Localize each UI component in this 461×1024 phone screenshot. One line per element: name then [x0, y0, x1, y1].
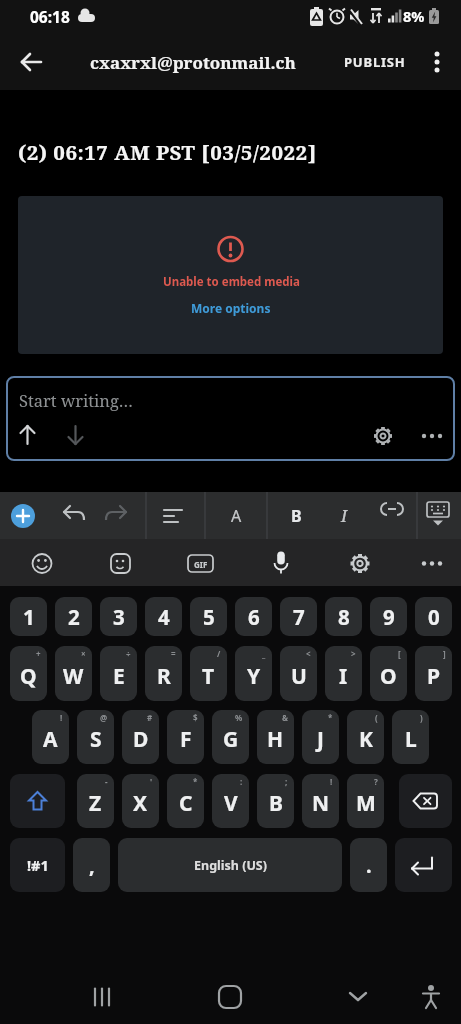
button[interactable] — [409, 975, 453, 1019]
button[interactable]: 1 — [10, 597, 47, 636]
button[interactable] — [5, 498, 41, 534]
staticText: Z — [89, 789, 102, 818]
staticText: / — [217, 648, 221, 659]
staticText: _ — [262, 648, 266, 659]
staticText: T — [202, 662, 215, 691]
button[interactable]: ' — [122, 774, 159, 828]
button[interactable]: / — [190, 646, 227, 701]
staticText: L — [405, 725, 417, 754]
button[interactable]: [ — [370, 646, 407, 701]
staticText: % — [235, 712, 243, 723]
button[interactable] — [399, 774, 452, 828]
button[interactable]: = — [145, 646, 182, 701]
button[interactable] — [10, 41, 54, 85]
button[interactable]: ? — [347, 774, 384, 828]
button[interactable] — [101, 496, 139, 536]
button[interactable]: @ — [77, 710, 114, 764]
button[interactable] — [420, 496, 458, 536]
button[interactable]: 2 — [55, 597, 92, 636]
staticText: = — [171, 648, 176, 659]
button[interactable] — [278, 496, 316, 536]
button[interactable] — [98, 542, 142, 584]
button[interactable]: * — [167, 774, 204, 828]
staticText: 9 — [383, 603, 395, 631]
button[interactable]: !#1 — [10, 838, 65, 892]
staticText: U — [291, 662, 307, 691]
staticText: < — [306, 648, 311, 659]
button[interactable]: + — [10, 646, 47, 701]
button[interactable] — [259, 542, 303, 584]
button[interactable]: More options — [168, 292, 293, 324]
button[interactable] — [326, 496, 364, 536]
button[interactable] — [10, 774, 65, 828]
staticText: * — [328, 712, 333, 723]
button[interactable]: 5 — [190, 597, 227, 636]
button[interactable]: & — [257, 710, 294, 764]
button[interactable]: , — [73, 838, 110, 892]
button[interactable]: 7 — [280, 597, 317, 636]
button[interactable]: ) — [392, 710, 429, 764]
button[interactable]: 4 — [145, 597, 182, 636]
staticText: . — [366, 852, 372, 879]
staticText: [ — [398, 648, 401, 659]
button[interactable] — [53, 496, 91, 536]
button[interactable]: ( — [347, 710, 384, 764]
staticText: I — [341, 505, 348, 527]
button[interactable]: < — [280, 646, 317, 701]
button[interactable]: 6 — [235, 597, 272, 636]
button[interactable]: > — [325, 646, 362, 701]
staticText: 8% — [403, 6, 425, 26]
button[interactable]: Unable to embed media — [18, 196, 443, 354]
staticText: PUBLISH — [344, 53, 406, 71]
button[interactable] — [419, 44, 455, 80]
staticText: 6 — [248, 603, 260, 631]
staticText: & — [282, 712, 288, 723]
button[interactable] — [336, 975, 380, 1019]
staticText: 1 — [23, 603, 35, 631]
button[interactable] — [80, 975, 124, 1019]
button[interactable] — [208, 975, 252, 1019]
staticText: 0 — [428, 603, 440, 631]
button[interactable]: _ — [235, 646, 272, 701]
button[interactable]: PUBLISH — [340, 44, 410, 80]
button[interactable] — [410, 542, 454, 584]
button[interactable]: English (US) — [118, 838, 342, 892]
button[interactable]: . — [350, 838, 387, 892]
button[interactable]: : — [212, 774, 249, 828]
button[interactable]: ! — [32, 710, 69, 764]
staticText: A — [43, 725, 58, 754]
button[interactable]: $ — [167, 710, 204, 764]
button[interactable]: ; — [257, 774, 294, 828]
button[interactable] — [374, 496, 412, 536]
button[interactable]: Start writing… — [6, 376, 455, 461]
staticText: ? — [374, 776, 378, 787]
button[interactable]: 3 — [100, 597, 137, 636]
button[interactable] — [178, 542, 222, 584]
staticText: * — [193, 776, 198, 787]
button[interactable]: 8 — [325, 597, 362, 636]
staticText: B — [269, 789, 283, 818]
button[interactable]: ] — [415, 646, 452, 701]
button[interactable]: 0 — [415, 597, 452, 636]
button[interactable]: ! — [302, 774, 339, 828]
staticText: C — [179, 789, 193, 818]
button[interactable]: 9 — [370, 597, 407, 636]
button[interactable]: * — [302, 710, 339, 764]
staticText: English (US) — [194, 857, 267, 874]
button[interactable] — [395, 838, 452, 892]
button[interactable] — [155, 496, 193, 536]
staticText: O — [380, 662, 397, 691]
button[interactable]: # — [122, 710, 159, 764]
button[interactable] — [218, 496, 256, 536]
button[interactable] — [20, 542, 64, 584]
staticText: + — [36, 648, 41, 659]
staticText: > — [351, 648, 356, 659]
button[interactable] — [338, 542, 382, 584]
button[interactable]: % — [212, 710, 249, 764]
staticText: P — [427, 662, 441, 691]
button[interactable]: × — [55, 646, 92, 701]
staticText: 8 — [338, 603, 350, 631]
button[interactable]: - — [77, 774, 114, 828]
staticText: 3 — [113, 603, 125, 631]
button[interactable]: ÷ — [100, 646, 137, 701]
